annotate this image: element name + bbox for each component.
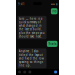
staticText: Sure — here is a quick summary of what c… — [19, 17, 45, 38]
staticText: Hey — [52, 9, 56, 13]
staticText: 9:41 — [18, 2, 25, 6]
staticText: Anytime. I also tidied the layout and fi… — [19, 49, 44, 67]
staticText: ▪▪ ▮ — [51, 3, 57, 6]
staticText: Thanks — [48, 42, 56, 46]
